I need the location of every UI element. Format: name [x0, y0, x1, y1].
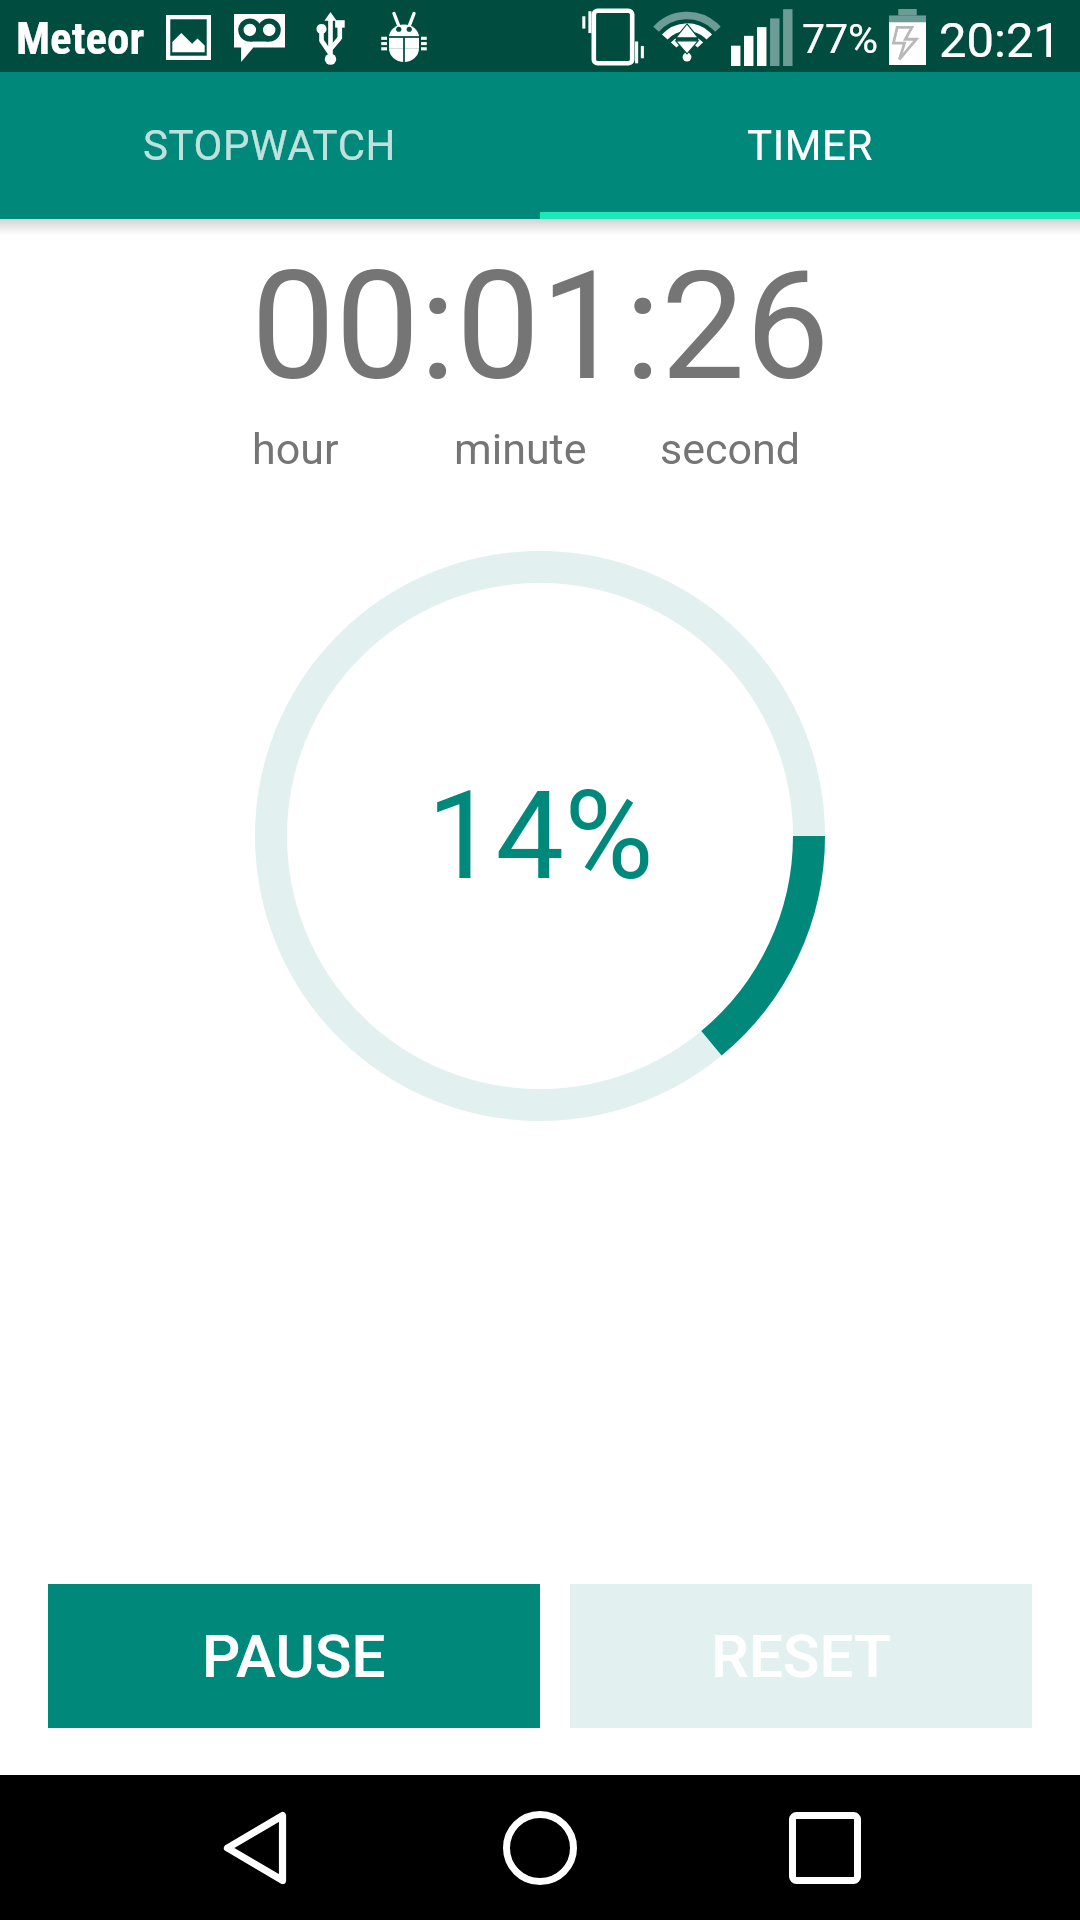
staticText: hour	[252, 424, 339, 474]
button[interactable]: STOPWATCH	[0, 72, 540, 219]
staticText: Meteor	[16, 12, 145, 65]
staticText: RESET	[711, 1621, 892, 1691]
staticText: STOPWATCH	[143, 121, 397, 170]
button[interactable]: PAUSE	[48, 1584, 540, 1728]
staticText: 00:01:26	[251, 239, 830, 415]
button[interactable]: Back	[195, 1788, 315, 1908]
button[interactable]: TIMER	[540, 72, 1080, 219]
staticText: TIMER	[747, 121, 873, 170]
staticText: 20:21	[939, 12, 1062, 69]
staticText: PAUSE	[202, 1621, 386, 1691]
button[interactable]: RESET	[570, 1584, 1032, 1728]
staticText: 77%	[802, 15, 879, 63]
staticText: second	[660, 424, 801, 474]
button[interactable]: Home	[480, 1788, 600, 1908]
staticText: minute	[454, 424, 587, 474]
staticText: 14%	[427, 765, 654, 908]
button[interactable]: Recent apps	[765, 1788, 885, 1908]
